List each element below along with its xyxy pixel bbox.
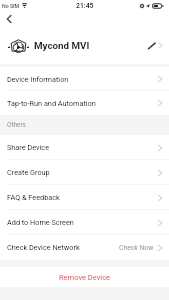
staticText: Add to Home Screen xyxy=(7,218,74,227)
staticText: Tap-to-Run and Automation xyxy=(7,99,96,108)
button[interactable]: Tap-to-Run and Automation xyxy=(0,91,169,115)
staticText: 21:45 xyxy=(76,2,94,10)
button[interactable]: FAQ & Feedback xyxy=(0,185,169,210)
staticText: Others xyxy=(7,121,26,129)
button[interactable]: Add to Home Screen xyxy=(0,210,169,235)
staticText: Remove Device xyxy=(59,273,111,282)
staticText: Check Now xyxy=(119,244,154,252)
button[interactable]: Remove Device xyxy=(0,267,169,287)
staticText: Create Group xyxy=(7,168,50,177)
staticText: FAQ & Feedback xyxy=(7,193,60,202)
button[interactable]: Edit name xyxy=(145,39,158,52)
button[interactable]: Create Group xyxy=(0,160,169,185)
staticText: No SIM xyxy=(2,3,20,9)
staticText: Check Device Network xyxy=(7,243,80,252)
button[interactable]: Share Device xyxy=(0,135,169,160)
button[interactable]: Device Information xyxy=(0,67,169,91)
button[interactable]: Back xyxy=(3,13,15,25)
staticText: Mycond MVI xyxy=(34,40,90,51)
button[interactable]: Check Device Network xyxy=(0,235,169,260)
staticText: Share Device xyxy=(7,143,50,152)
staticText: Device Information xyxy=(7,75,69,84)
